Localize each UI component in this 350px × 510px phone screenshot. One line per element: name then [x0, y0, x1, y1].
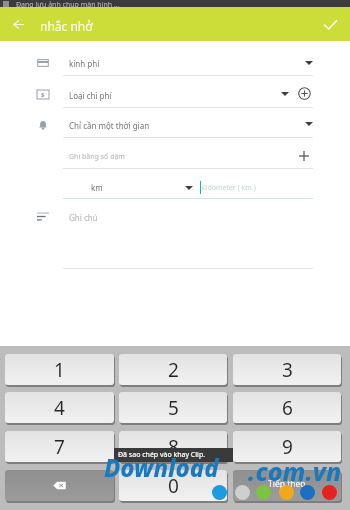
staticText: Đang lưu ảnh chụp màn hình ...	[16, 0, 120, 7]
staticText: Tiếp theo	[268, 478, 306, 490]
button[interactable]: Next	[233, 470, 341, 501]
staticText: 5	[168, 395, 179, 421]
staticText: kinh phí	[69, 58, 100, 69]
staticText: 7	[54, 434, 65, 460]
button[interactable]: Add category	[294, 83, 314, 103]
button[interactable]: Dropdown	[299, 115, 318, 134]
button[interactable]: Save	[313, 7, 347, 41]
button[interactable]: Add	[294, 146, 314, 166]
button[interactable]: 9	[233, 431, 341, 462]
staticText: Ghi chú	[69, 212, 98, 223]
staticText: Ghi bằng số dặm	[69, 152, 125, 162]
staticText: 3	[282, 357, 293, 383]
button[interactable]: 4	[5, 392, 114, 423]
button[interactable]: Dropdown	[275, 85, 294, 104]
staticText: Chỉ cần một thời gian	[69, 120, 150, 131]
staticText: Odometer ( km )	[202, 183, 256, 193]
button[interactable]: 6	[233, 392, 341, 423]
staticText: 2	[168, 357, 179, 383]
button[interactable]: 8	[119, 431, 227, 462]
button[interactable]: Dropdown	[179, 179, 198, 198]
button[interactable]: 3	[233, 354, 341, 385]
staticText: km	[91, 182, 103, 193]
staticText: nhắc nhở	[40, 18, 93, 34]
staticText: $	[41, 91, 45, 99]
button[interactable]: 0	[119, 470, 227, 501]
button[interactable]: Back	[1, 7, 35, 41]
staticText: 6	[282, 395, 293, 421]
staticText: Download	[104, 451, 219, 484]
staticText: 9	[282, 434, 293, 460]
button[interactable]: 5	[119, 392, 227, 423]
staticText: 4	[54, 395, 65, 421]
staticText: .com.vn	[248, 454, 342, 488]
staticText: Đã sao chép vào khay Clip.	[118, 450, 206, 460]
button[interactable]: Dropdown	[299, 54, 318, 73]
button[interactable]: 1	[5, 354, 114, 385]
staticText: 8	[168, 434, 179, 460]
staticText: Loại chi phí	[69, 90, 112, 101]
staticText: 0	[168, 473, 179, 499]
button[interactable]: Backspace	[5, 470, 114, 501]
button[interactable]: 7	[5, 431, 114, 462]
staticText: 1	[54, 357, 65, 383]
button[interactable]: 2	[119, 354, 227, 385]
